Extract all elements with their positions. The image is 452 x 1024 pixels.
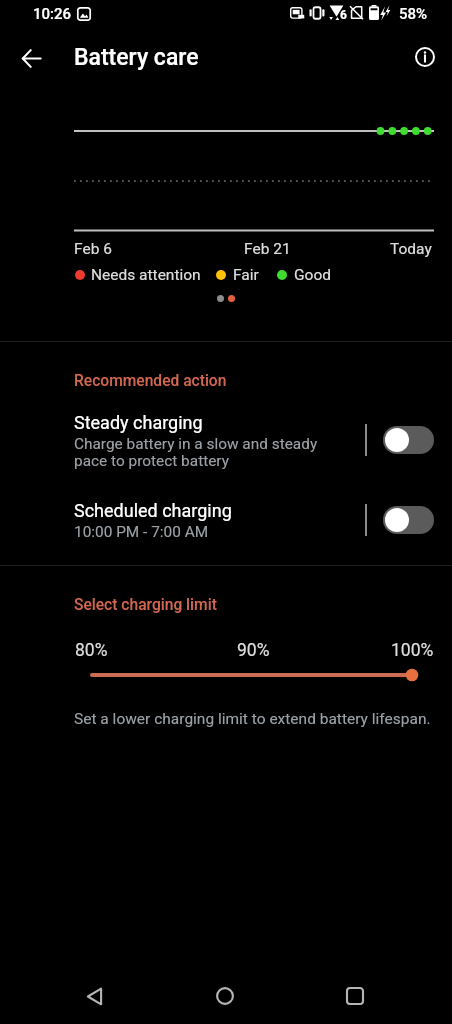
staticText: 10:00 PM - 7:00 AM — [74, 523, 209, 541]
staticText: 6 — [340, 8, 347, 22]
button[interactable]: Scheduled charging — [0, 492, 452, 548]
staticText: Set a lower charging limit to extend bat… — [74, 710, 431, 728]
button[interactable]: Steady charging — [0, 404, 452, 482]
staticText: Feb 21 — [244, 240, 291, 258]
staticText: 90% — [237, 640, 270, 661]
staticText: Fair — [233, 266, 259, 284]
button[interactable]: Navigate up — [9, 36, 53, 80]
staticText: 58% — [399, 5, 428, 23]
staticText: Scheduled charging — [74, 500, 232, 521]
staticText: Needs attention — [91, 266, 201, 284]
staticText: Good — [294, 266, 331, 284]
staticText: Battery care — [74, 44, 199, 71]
staticText: Charge battery in a slow and steady pace… — [74, 435, 318, 470]
button[interactable]: Information — [403, 35, 447, 79]
button[interactable]: Charging limit slider — [0, 663, 452, 687]
staticText: Today — [390, 240, 432, 258]
button[interactable]: Recent apps — [323, 970, 387, 1022]
staticText: Select charging limit — [74, 596, 217, 614]
staticText: Steady charging — [74, 412, 203, 433]
button[interactable]: Steady charging — [383, 426, 434, 454]
staticText: 10:26 — [33, 5, 72, 23]
button[interactable]: Scheduled charging — [383, 506, 434, 534]
button[interactable]: Back — [62, 970, 126, 1022]
staticText: Feb 6 — [74, 240, 112, 258]
staticText: 80% — [75, 640, 108, 661]
button[interactable]: Home — [193, 970, 257, 1022]
staticText: Recommended action — [74, 372, 227, 390]
staticText: 100% — [391, 640, 434, 661]
